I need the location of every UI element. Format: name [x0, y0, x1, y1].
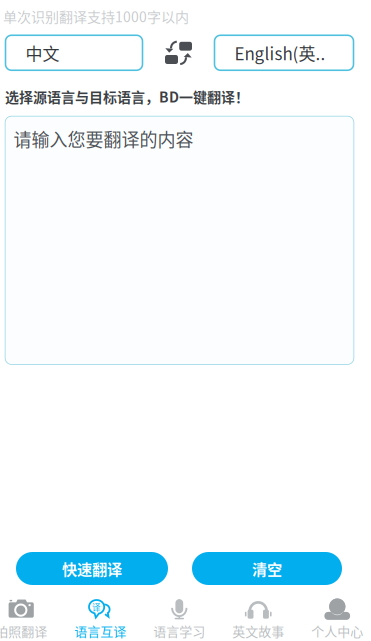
button[interactable]: 拍照翻译 [0, 593, 61, 641]
button[interactable]: Swap languages [165, 41, 192, 64]
button[interactable]: 快速翻译 [16, 552, 168, 585]
staticText: English(英.. [234, 40, 325, 65]
button[interactable]: English(英.. [214, 35, 353, 70]
button[interactable]: 个人中心 [298, 593, 371, 641]
button[interactable]: 清空 [192, 552, 342, 585]
staticText: 中文 [25, 40, 59, 65]
staticText: 清空 [252, 557, 282, 579]
staticText: 译 [92, 601, 101, 613]
staticText: 语言互译 [74, 621, 126, 640]
button[interactable]: 英文故事 [219, 593, 298, 641]
button[interactable]: 语言学习 [140, 593, 219, 641]
staticText: 单次识别翻译支持1000字以内 [3, 6, 189, 26]
staticText: 个人中心 [311, 621, 363, 640]
staticText: 快速翻译 [62, 557, 122, 579]
staticText: 请输入您要翻译的内容 [13, 125, 193, 152]
staticText: 语言学习 [153, 621, 205, 640]
button[interactable]: 译 [61, 593, 140, 641]
staticText: 拍照翻译 [0, 621, 47, 640]
staticText: 英文故事 [232, 621, 284, 640]
button[interactable]: 中文 [5, 35, 142, 70]
staticText: 选择源语言与目标语言，BD一键翻译！ [5, 86, 249, 107]
